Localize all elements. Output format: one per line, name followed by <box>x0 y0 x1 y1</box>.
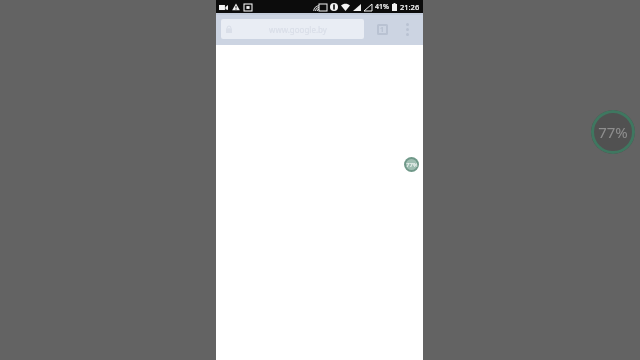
staticText: 21:26 <box>400 2 420 12</box>
button[interactable]: Recording battery 77 percent <box>591 110 635 154</box>
button[interactable]: More options <box>396 18 418 40</box>
staticText: 41% <box>375 2 389 12</box>
button[interactable]: www.google.by <box>221 19 364 39</box>
staticText: 77% <box>406 161 418 169</box>
staticText: www.google.by <box>269 24 327 35</box>
button[interactable]: Recording battery 77 percent <box>404 157 419 172</box>
staticText: 77% <box>598 122 628 142</box>
button[interactable]: Tabs <box>370 17 394 41</box>
staticText: 1 <box>380 25 385 35</box>
